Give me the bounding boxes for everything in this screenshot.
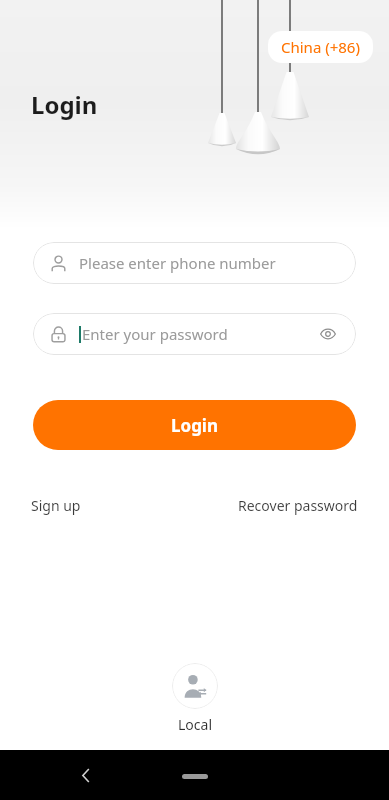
staticText: Login	[31, 88, 98, 121]
staticText: Enter your password	[82, 324, 316, 344]
button[interactable]: Recover password	[238, 492, 358, 519]
button[interactable]: China (+86)	[268, 31, 373, 63]
button[interactable]: Back	[73, 762, 99, 788]
staticText: Recover password	[238, 496, 358, 515]
staticText: Sign up	[31, 496, 81, 515]
button[interactable]: Sign up	[31, 492, 81, 519]
staticText: China (+86)	[281, 37, 360, 57]
staticText: Local	[178, 715, 212, 734]
button[interactable]: Show password	[316, 322, 340, 346]
button[interactable]: Home	[182, 774, 208, 779]
button[interactable]: Login	[33, 400, 356, 450]
staticText: Login	[171, 414, 219, 437]
button[interactable]: Please enter phone number	[33, 242, 356, 284]
staticText: Please enter phone number	[79, 253, 276, 273]
button[interactable]: Local login	[172, 663, 218, 709]
button[interactable]: Enter your password	[33, 313, 356, 355]
